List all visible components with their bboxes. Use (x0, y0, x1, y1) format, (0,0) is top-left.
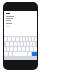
button[interactable]: Key (27, 42, 29, 46)
button[interactable]: Key (8, 37, 11, 41)
button[interactable]: Key (12, 37, 15, 41)
button[interactable]: Key (18, 47, 21, 51)
button[interactable]: Key (4, 37, 7, 41)
button[interactable]: Key (21, 42, 23, 46)
button[interactable]: Key (20, 37, 22, 41)
button[interactable]: Key (24, 42, 26, 46)
button[interactable]: Key (6, 42, 9, 46)
button[interactable]: Key (30, 42, 32, 46)
button[interactable]: Key (10, 47, 13, 51)
button[interactable]: Key (22, 47, 25, 51)
button[interactable]: Key (7, 47, 9, 51)
button[interactable]: Key (30, 47, 33, 51)
button[interactable]: Key (29, 37, 31, 41)
button[interactable]: Key (10, 42, 13, 46)
button[interactable]: Key (14, 42, 17, 46)
button[interactable]: Key (4, 47, 6, 51)
button[interactable]: Period (28, 52, 31, 56)
button[interactable]: Symbols (4, 52, 8, 56)
button[interactable]: Key (16, 37, 19, 41)
button[interactable]: Key (34, 47, 37, 51)
button[interactable]: Key (35, 37, 37, 41)
button[interactable]: Key (18, 42, 20, 46)
button[interactable]: Send (32, 52, 37, 56)
button[interactable]: Key (14, 47, 17, 51)
button[interactable]: Key (26, 47, 29, 51)
button[interactable]: Key (23, 37, 25, 41)
button[interactable]: Key (33, 42, 35, 46)
button[interactable]: Key (32, 37, 34, 41)
button[interactable]: Key (26, 37, 28, 41)
button[interactable]: Comma (9, 52, 12, 56)
